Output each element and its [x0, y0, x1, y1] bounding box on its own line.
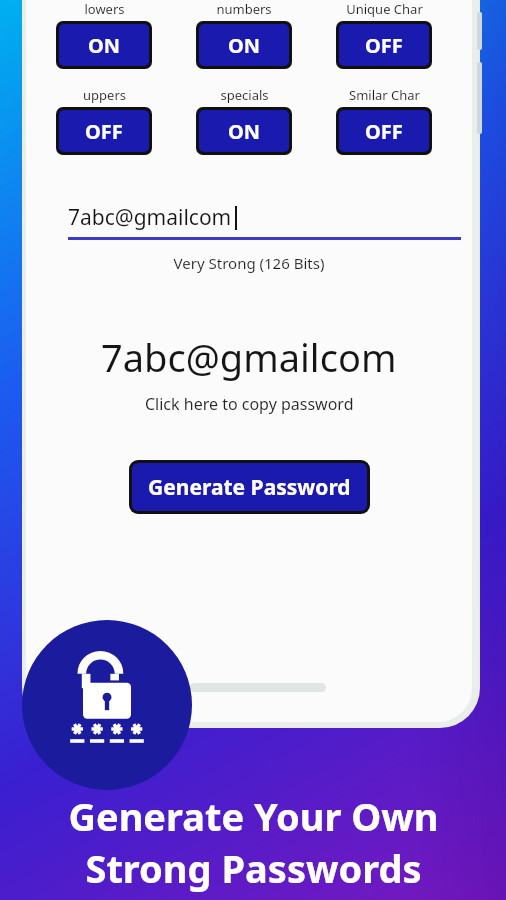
- staticText: Click here to copy password: [145, 393, 354, 415]
- staticText: Generate Your Own: [68, 790, 439, 842]
- button[interactable]: ON: [199, 110, 289, 152]
- staticText: specials: [220, 86, 269, 104]
- staticText: OFF: [365, 118, 403, 145]
- staticText: Strong Passwords: [85, 842, 422, 894]
- staticText: uppers: [83, 86, 126, 104]
- staticText: lowers: [84, 0, 125, 18]
- button[interactable]: ON: [199, 24, 289, 66]
- other: Password lock: [22, 620, 192, 790]
- staticText: ON: [228, 32, 261, 59]
- staticText: 7abc@gmailcom: [101, 331, 397, 383]
- staticText: Unique Char: [346, 0, 423, 18]
- staticText: 7abc@gmailcom: [68, 203, 232, 232]
- button[interactable]: ON: [59, 24, 149, 66]
- staticText: Very Strong (126 Bits): [26, 253, 472, 273]
- button[interactable]: Generate Password: [132, 463, 367, 511]
- button[interactable]: OFF: [59, 110, 149, 152]
- staticText: ON: [88, 32, 121, 59]
- staticText: numbers: [216, 0, 272, 18]
- button[interactable]: OFF: [339, 24, 429, 66]
- staticText: Smilar Char: [349, 86, 420, 104]
- button[interactable]: OFF: [339, 110, 429, 152]
- staticText: OFF: [85, 118, 123, 145]
- staticText: Generate Password: [148, 473, 351, 502]
- staticText: ON: [228, 118, 261, 145]
- button[interactable]: 7abc@gmailcom: [26, 331, 472, 415]
- staticText: OFF: [365, 32, 403, 59]
